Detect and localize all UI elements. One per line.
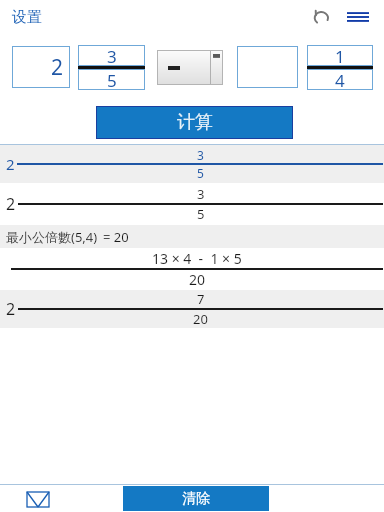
staticText: 1 [335, 45, 345, 66]
button[interactable]: 4 [307, 69, 373, 90]
staticText: 2 [51, 53, 64, 82]
button[interactable]: 2 [12, 46, 70, 88]
staticText: 3 [107, 45, 117, 66]
staticText: 3 [197, 147, 204, 163]
staticText: 20 [193, 310, 208, 328]
button[interactable]: Operator [157, 50, 223, 85]
staticText: 7 [197, 290, 205, 308]
staticText: 清除 [182, 490, 210, 508]
staticText: 设置 [12, 8, 42, 27]
button[interactable]: Menu [342, 1, 374, 33]
staticText: 2 [6, 154, 15, 174]
staticText: 计算 [177, 111, 213, 134]
button[interactable] [237, 46, 298, 88]
staticText: 20 [189, 270, 206, 289]
button[interactable]: 清除 [123, 486, 269, 511]
button[interactable]: 5 [78, 69, 145, 90]
staticText: 13 × 4 - 1 × 5 [152, 249, 242, 268]
button[interactable]: 1 [307, 45, 373, 66]
staticText: 5 [197, 165, 204, 181]
staticText: 5 [107, 69, 117, 90]
staticText: 3 [197, 185, 205, 203]
staticText: 2 [6, 298, 16, 320]
button[interactable]: Undo [306, 2, 336, 32]
staticText: = 20 [103, 228, 129, 246]
staticText: 2 [6, 193, 16, 215]
button[interactable]: 设置 [8, 4, 46, 31]
button[interactable]: Email [22, 487, 54, 511]
staticText: 4 [335, 69, 345, 90]
button[interactable]: 3 [78, 45, 145, 66]
button[interactable]: 计算 [96, 106, 293, 139]
staticText: 最小公倍數(5,4) [6, 228, 98, 246]
staticText: 5 [197, 205, 205, 223]
